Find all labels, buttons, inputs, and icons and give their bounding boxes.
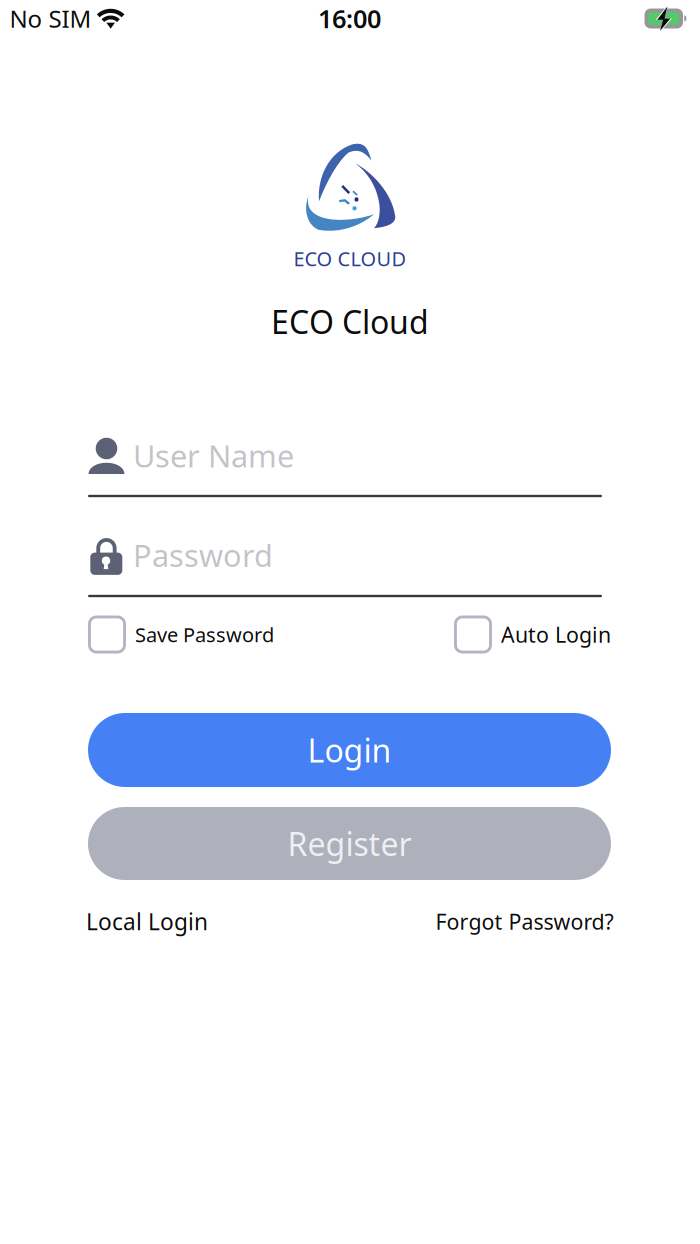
staticText: Local Login [86, 906, 208, 936]
staticText: ECO CLOUD [293, 245, 406, 272]
staticText: No SIM [9, 3, 91, 34]
staticText: Login [307, 729, 391, 771]
staticText: Password [133, 535, 273, 575]
button[interactable]: Login [88, 713, 611, 787]
button[interactable]: Register [88, 807, 611, 880]
staticText: Save Password [135, 621, 274, 648]
button[interactable]: Forgot Password? [435, 907, 613, 936]
button[interactable]: Local Login [86, 906, 208, 936]
staticText: ECO Cloud [271, 300, 429, 343]
staticText: Forgot Password? [435, 907, 613, 936]
staticText: User Name [133, 435, 294, 476]
button[interactable]: Auto Login [454, 615, 611, 653]
staticText: Register [287, 822, 411, 865]
button[interactable]: Save Password [88, 615, 274, 653]
staticText: 16:00 [318, 2, 381, 35]
staticText: Auto Login [501, 620, 611, 649]
